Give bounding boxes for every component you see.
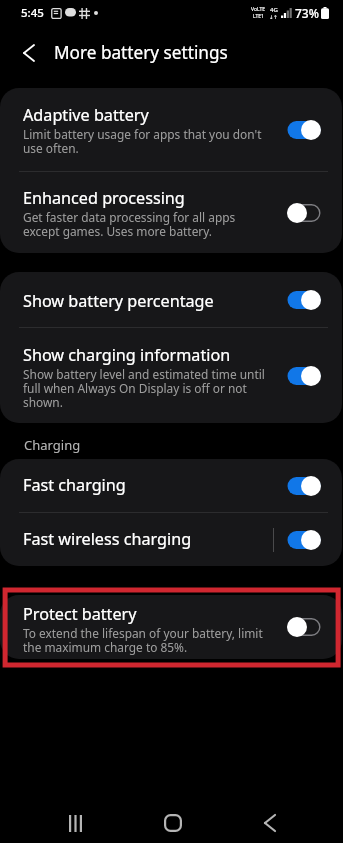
staticText: 5:45: [21, 5, 44, 21]
button[interactable]: On: [281, 361, 327, 391]
staticText: To extend the lifespan of your battery, …: [23, 627, 267, 655]
staticText: Enhanced processing: [23, 188, 185, 209]
staticText: ↓↑: [269, 14, 278, 20]
button[interactable]: On: [281, 285, 327, 315]
button[interactable]: On: [281, 471, 327, 501]
button[interactable]: Protect battery: [0, 595, 342, 659]
staticText: Adaptive battery: [23, 105, 149, 126]
staticText: 4G: [270, 6, 278, 14]
button[interactable]: Adaptive battery: [0, 88, 342, 171]
button[interactable]: Fast wireless charging: [0, 513, 342, 566]
staticText: Fast charging: [23, 475, 126, 496]
staticText: Protect battery: [23, 604, 137, 625]
staticText: Show battery level and estimated time un…: [23, 368, 267, 410]
button[interactable]: Show charging information: [0, 328, 342, 423]
staticText: Fast wireless charging: [23, 529, 192, 550]
button[interactable]: Home: [151, 803, 195, 843]
staticText: 73%: [295, 5, 319, 21]
staticText: LTE1: [253, 13, 264, 20]
staticText: Charging: [24, 436, 81, 454]
button[interactable]: Fast charging: [0, 459, 342, 512]
button[interactable]: Off: [281, 612, 327, 642]
button[interactable]: Off: [281, 198, 327, 228]
staticText: Show charging information: [23, 345, 231, 366]
button[interactable]: On: [281, 525, 327, 555]
staticText: Limit battery usage for apps that you do…: [23, 128, 267, 156]
button[interactable]: Enhanced processing: [0, 172, 342, 253]
button[interactable]: Navigate up: [12, 36, 46, 70]
button[interactable]: Back: [248, 803, 292, 843]
button[interactable]: On: [281, 115, 327, 145]
button[interactable]: Show battery percentage: [0, 272, 342, 327]
staticText: Get faster data processing for all apps …: [23, 211, 267, 239]
button[interactable]: Recent apps: [53, 803, 97, 843]
staticText: More battery settings: [54, 41, 228, 64]
staticText: Show battery percentage: [23, 291, 214, 312]
staticText: VoLTE: [251, 6, 266, 13]
